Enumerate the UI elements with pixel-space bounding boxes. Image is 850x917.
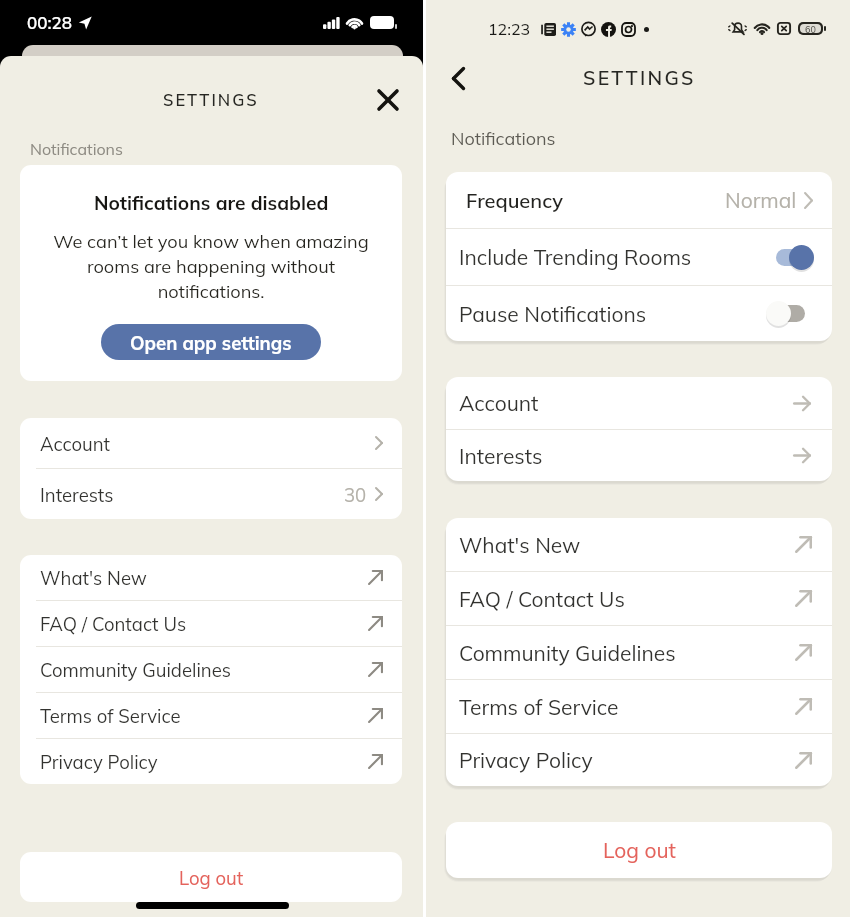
- staticText: Pause Notifications: [459, 301, 647, 327]
- staticText: We can’t let you know when amazing rooms…: [48, 230, 374, 302]
- button[interactable]: FAQ / Contact Us: [446, 572, 832, 625]
- staticText: 12:23: [488, 19, 531, 39]
- button[interactable]: Community Guidelines: [446, 626, 832, 679]
- staticText: Include Trending Rooms: [459, 244, 692, 270]
- button[interactable]: Terms of Service: [446, 680, 832, 733]
- staticText: Interests: [459, 443, 543, 469]
- button[interactable]: Interests: [20, 469, 402, 519]
- staticText: Notifications: [451, 127, 556, 150]
- staticText: SETTINGS: [163, 89, 259, 110]
- button[interactable]: Log out: [446, 822, 832, 878]
- staticText: Frequency: [466, 188, 563, 213]
- button[interactable]: Include Trending Rooms: [446, 229, 832, 285]
- button[interactable]: What's New: [20, 555, 402, 600]
- button[interactable]: What's New: [446, 518, 832, 571]
- staticText: SETTINGS: [583, 65, 696, 89]
- staticText: FAQ / Contact Us: [459, 586, 625, 612]
- staticText: Account: [40, 432, 111, 455]
- staticText: Terms of Service: [40, 704, 181, 727]
- staticText: What's New: [459, 532, 581, 558]
- button[interactable]: Community Guidelines: [20, 647, 402, 692]
- button[interactable]: Frequency: [446, 172, 832, 228]
- staticText: Community Guidelines: [40, 658, 231, 681]
- staticText: Open app settings: [130, 331, 292, 354]
- button[interactable]: Interests: [446, 430, 832, 481]
- button[interactable]: Pause Notifications: [446, 286, 832, 341]
- button[interactable]: Open app settings: [101, 324, 321, 360]
- staticText: Privacy Policy: [40, 750, 158, 773]
- staticText: Log out: [179, 866, 244, 889]
- button[interactable]: Close: [369, 81, 406, 118]
- button[interactable]: Terms of Service: [20, 693, 402, 738]
- staticText: FAQ / Contact Us: [40, 612, 187, 635]
- staticText: Terms of Service: [459, 694, 619, 720]
- button[interactable]: Account: [446, 377, 832, 429]
- button[interactable]: Privacy Policy: [446, 734, 832, 786]
- button[interactable]: Account: [20, 418, 402, 468]
- staticText: Normal: [725, 187, 797, 213]
- staticText: Log out: [603, 837, 676, 863]
- staticText: What's New: [40, 566, 147, 589]
- staticText: 60: [805, 24, 816, 33]
- button[interactable]: FAQ / Contact Us: [20, 601, 402, 646]
- staticText: 00:28: [27, 12, 72, 33]
- button[interactable]: Privacy Policy: [20, 739, 402, 784]
- staticText: Notifications are disabled: [94, 191, 329, 215]
- staticText: Community Guidelines: [459, 640, 676, 666]
- staticText: Account: [459, 390, 539, 416]
- button[interactable]: Back: [441, 61, 475, 95]
- button[interactable]: Log out: [20, 852, 402, 902]
- staticText: Notifications: [30, 139, 123, 159]
- staticText: Interests: [40, 483, 114, 506]
- staticText: 30: [344, 483, 367, 506]
- staticText: Privacy Policy: [459, 747, 593, 773]
